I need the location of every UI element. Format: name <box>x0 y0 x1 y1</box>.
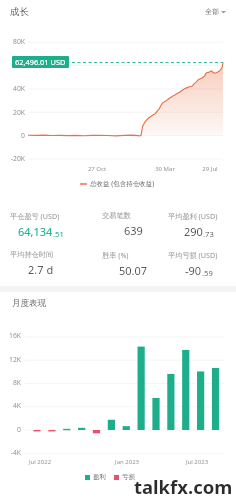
button[interactable]: 交易笔数 <box>102 211 164 238</box>
staticText: 2.7 d <box>28 262 54 277</box>
staticText: 639 <box>124 223 143 238</box>
staticText: 40K <box>0 84 25 93</box>
staticText: 亏损 <box>122 473 135 481</box>
staticText: 平均盈利 (USD) <box>168 211 230 221</box>
staticText: 50.07 <box>119 263 148 278</box>
staticText: 64,134 <box>18 224 53 239</box>
staticText: 平仓盈亏 (USD) <box>10 211 72 221</box>
staticText: 胜率 (%) <box>102 250 164 260</box>
staticText: -90 <box>185 263 202 278</box>
button[interactable]: 全部 <box>203 4 228 19</box>
button[interactable]: 平仓盈亏 (USD) <box>10 211 72 239</box>
staticText: Jan 2023 <box>97 458 157 466</box>
staticText: Jul 2023 <box>167 458 227 466</box>
staticText: 0 <box>0 425 21 434</box>
button[interactable]: 平均盈利 (USD) <box>168 211 230 239</box>
staticText: 平均持仓时间 <box>10 250 72 259</box>
staticText: 27 Oct <box>67 165 127 173</box>
staticText: 12K <box>0 355 21 364</box>
button[interactable]: 平均持仓时间 <box>10 250 72 277</box>
staticText: 4K <box>0 401 21 410</box>
staticText: 盈利 <box>93 473 106 481</box>
staticText: Jul 2022 <box>10 458 70 466</box>
staticText: 总收益 (包含持仓收益) <box>90 179 155 188</box>
staticText: talkfx.com <box>134 474 233 499</box>
staticText: 30 Mar <box>135 165 195 173</box>
staticText: 29 Jul <box>180 165 236 173</box>
staticText: 290 <box>184 224 203 239</box>
button[interactable]: 平均亏损 (USD) <box>168 250 230 278</box>
staticText: 全部 <box>205 7 219 16</box>
staticText: 20K <box>0 108 25 117</box>
staticText: 平均亏损 (USD) <box>168 250 230 260</box>
staticText: .73 <box>203 229 214 239</box>
staticText: .51 <box>53 229 64 239</box>
staticText: 80K <box>0 37 25 46</box>
staticText: .59 <box>202 268 213 278</box>
staticText: 8K <box>0 378 21 387</box>
staticText: 成长 <box>10 6 29 18</box>
staticText: 16K <box>0 331 21 340</box>
staticText: 0 <box>0 131 25 140</box>
staticText: -4K <box>0 448 21 457</box>
staticText: 月度表现 <box>12 298 46 309</box>
staticText: 交易笔数 <box>102 211 164 220</box>
staticText: -20K <box>0 154 25 163</box>
button[interactable]: 胜率 (%) <box>102 250 164 278</box>
staticText: 62,496.01 USD <box>15 57 66 67</box>
